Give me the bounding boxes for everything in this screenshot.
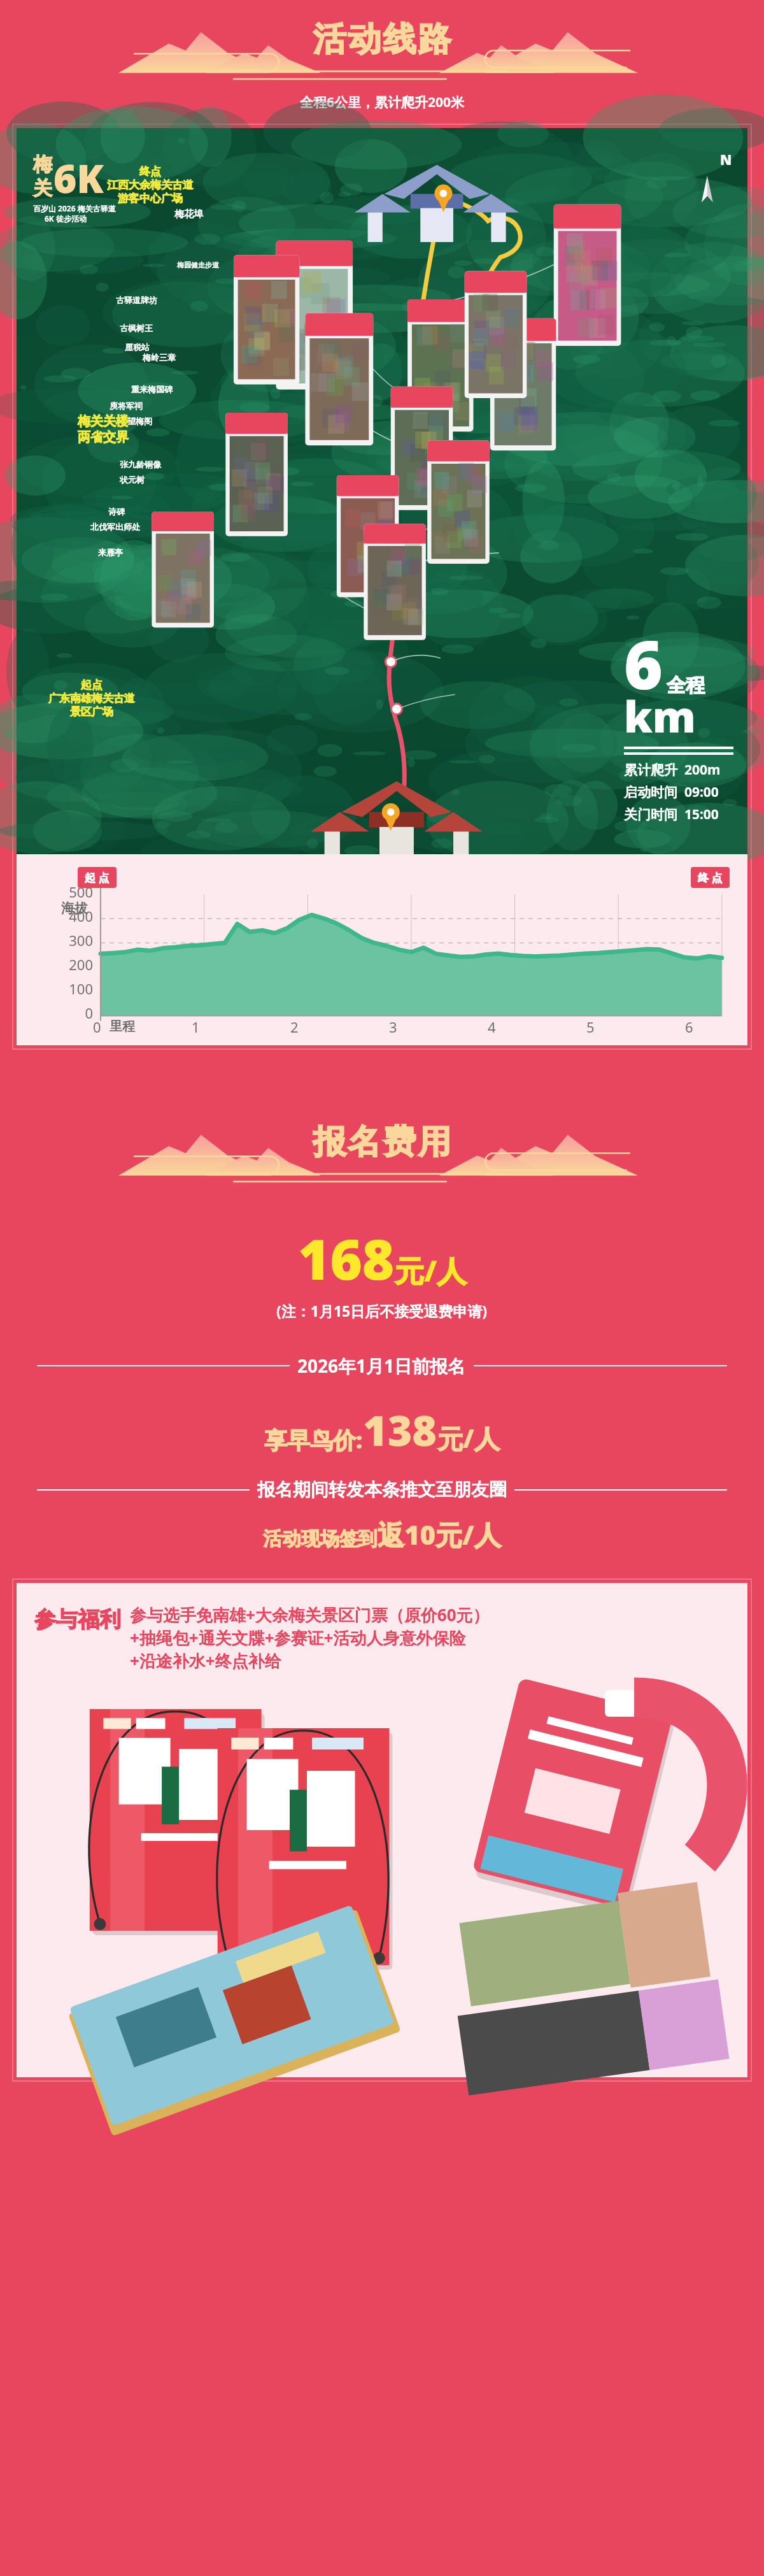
staticText: 景区广场 (70, 705, 113, 719)
staticText: 500 (17, 882, 93, 901)
staticText: 返10元/人 (378, 1516, 501, 1552)
staticText: 梅岭三章 (143, 352, 176, 362)
staticText: 起 点 (85, 870, 110, 885)
staticText: 两省交界 (78, 429, 129, 445)
staticText: (注：1月15日后不接受退费申请) (276, 1301, 488, 1320)
staticText: 重来梅国碑 (131, 384, 173, 394)
button[interactable]: 终 点 (691, 867, 730, 888)
staticText: 江西大余梅关古道 (107, 178, 194, 192)
staticText: 活动线路 (312, 18, 452, 61)
staticText: 全程 (667, 673, 705, 698)
staticText: 全程6公里，累计爬升200米 (0, 93, 764, 111)
staticText: 游客中心广场 (118, 192, 183, 205)
staticText: 0 (17, 1003, 93, 1022)
staticText: 厘税站 (125, 342, 150, 352)
staticText: 4 (488, 1017, 496, 1036)
staticText: 6 (624, 619, 663, 709)
staticText: N (720, 150, 732, 169)
staticText: 3 (389, 1017, 397, 1036)
staticText: 庾将军祠 (110, 401, 143, 411)
staticText: 梅关关楼 (78, 413, 129, 429)
staticText: 来雁亭 (98, 547, 123, 557)
staticText: 起点 (81, 678, 103, 692)
staticText: 终点 (139, 165, 161, 178)
staticText: 6 (685, 1017, 693, 1036)
staticText: 300 (17, 931, 93, 950)
staticText: 终 点 (698, 870, 723, 885)
staticText: 5 (586, 1017, 595, 1036)
staticText: 元/人 (395, 1250, 467, 1291)
staticText: +抽绳包+通关文牒+参赛证+活动人身意外保险 (130, 1626, 466, 1649)
staticText: 梅 (33, 152, 52, 176)
staticText: 168 (298, 1221, 395, 1296)
staticText: km (624, 686, 696, 745)
staticText: 广东南雄梅关古道 (48, 692, 135, 705)
staticText: 报名期间转发本条推文至朋友圈 (257, 1478, 507, 1501)
staticText: 元/人 (437, 1420, 500, 1456)
staticText: 古枫树王 (120, 323, 153, 333)
staticText: 6K 徒步活动 (45, 213, 87, 224)
staticText: 望梅阁 (127, 416, 152, 426)
staticText: 古驿道牌坊 (116, 295, 157, 305)
staticText: 百岁山 2026 梅关古驿道 (33, 203, 116, 213)
staticText: 关 (33, 176, 52, 201)
staticText: 0 (93, 1017, 101, 1036)
staticText: 张九龄铜像 (120, 459, 161, 469)
staticText: 200 (17, 955, 93, 974)
staticText: 里程 (110, 1019, 135, 1034)
staticText: 活动现场签到 (263, 1527, 378, 1551)
staticText: 100 (17, 979, 93, 998)
staticText: 诗碑 (108, 506, 125, 517)
button[interactable]: 起 点 (78, 867, 117, 888)
staticText: 累计爬升 200m (624, 761, 721, 779)
staticText: 北伐军出师处 (90, 522, 140, 532)
staticText: +沿途补水+终点补给 (130, 1649, 281, 1672)
staticText: 参与福利 (34, 1606, 121, 1633)
staticText: 关门时间 15:00 (624, 805, 719, 824)
staticText: 138 (363, 1401, 437, 1458)
staticText: 400 (17, 906, 93, 926)
staticText: 启动时间 09:00 (624, 783, 719, 801)
staticText: 梅园健走步道 (177, 261, 219, 269)
staticText: 海拔 (61, 900, 88, 917)
staticText: 报名费用 (312, 1121, 452, 1163)
staticText: 参与选手免南雄+大余梅关景区门票（原价60元） (130, 1603, 490, 1626)
staticText: 2 (290, 1017, 299, 1036)
staticText: 享早鸟价: (264, 1424, 363, 1456)
staticText: 1 (192, 1017, 200, 1036)
staticText: 6K (53, 151, 104, 204)
staticText: 2026年1月1日前报名 (297, 1354, 466, 1378)
staticText: 梅花埠 (174, 208, 203, 220)
staticText: 状元树 (120, 475, 145, 485)
